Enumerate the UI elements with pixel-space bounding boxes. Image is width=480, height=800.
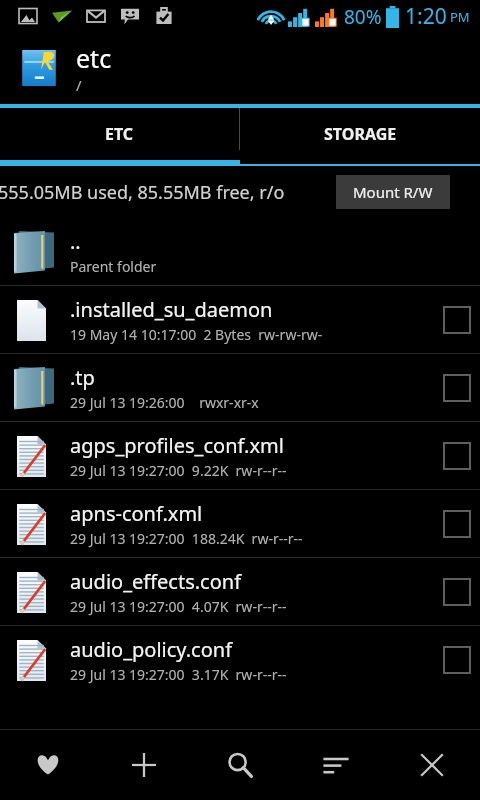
button[interactable]: Close bbox=[384, 730, 480, 800]
staticText: ETC bbox=[105, 123, 134, 145]
button[interactable]: .tp bbox=[0, 354, 480, 421]
staticText: audio_policy.conf bbox=[70, 636, 233, 663]
button[interactable]: Search bbox=[192, 730, 288, 800]
button[interactable]: agps_profiles_conf.xml bbox=[0, 422, 480, 489]
staticText: 555.05MB used, 85.55MB free, r/o bbox=[0, 180, 285, 205]
staticText: PM bbox=[450, 8, 470, 26]
button[interactable]: apns-conf.xml bbox=[0, 490, 480, 557]
staticText: agps_profiles_conf.xml bbox=[70, 432, 284, 459]
staticText: 1:20 bbox=[405, 2, 447, 31]
staticText: Parent folder bbox=[70, 257, 157, 276]
button[interactable]: .. bbox=[0, 218, 480, 285]
staticText: .installed_su_daemon bbox=[70, 296, 273, 323]
staticText: 29 Jul 13 19:26:00 rwxr-xr-x bbox=[70, 393, 259, 412]
button[interactable]: audio_effects.conf bbox=[0, 558, 480, 625]
staticText: audio_effects.conf bbox=[70, 568, 242, 595]
staticText: 80% bbox=[344, 4, 382, 30]
button[interactable]: .installed_su_daemon bbox=[0, 286, 480, 353]
staticText: .tp bbox=[70, 364, 95, 391]
staticText: 19 May 14 10:17:00 2 Bytes rw-rw-rw- bbox=[70, 325, 323, 344]
staticText: apns-conf.xml bbox=[70, 500, 203, 527]
button[interactable]: Select audio_policy.conf bbox=[434, 626, 480, 693]
button[interactable]: Select .installed_su_daemon bbox=[434, 286, 480, 353]
button[interactable]: Favorites bbox=[0, 730, 96, 800]
button[interactable]: Add bbox=[96, 730, 192, 800]
staticText: STORAGE bbox=[324, 123, 397, 145]
staticText: / bbox=[76, 75, 82, 95]
staticText: etc bbox=[76, 41, 112, 75]
staticText: Mount R/W bbox=[353, 182, 433, 202]
button[interactable]: ETC bbox=[0, 108, 239, 160]
staticText: .. bbox=[70, 228, 81, 255]
staticText: 29 Jul 13 19:27:00 3.17K rw-r--r-- bbox=[70, 665, 287, 684]
staticText: 29 Jul 13 19:27:00 4.07K rw-r--r-- bbox=[70, 597, 287, 616]
staticText: 29 Jul 13 19:27:00 9.22K rw-r--r-- bbox=[70, 461, 287, 480]
staticText: 29 Jul 13 19:27:00 188.24K rw-r--r-- bbox=[70, 529, 303, 548]
button[interactable]: Mount R/W bbox=[336, 175, 450, 209]
button[interactable]: Sort bbox=[288, 730, 384, 800]
button[interactable]: audio_policy.conf bbox=[0, 626, 480, 693]
button[interactable]: etc bbox=[0, 32, 480, 104]
button[interactable]: Select apns-conf.xml bbox=[434, 490, 480, 557]
button[interactable]: Select .tp bbox=[434, 354, 480, 421]
button[interactable]: Select audio_effects.conf bbox=[434, 558, 480, 625]
button[interactable]: Select agps_profiles_conf.xml bbox=[434, 422, 480, 489]
button[interactable]: STORAGE bbox=[240, 108, 480, 160]
